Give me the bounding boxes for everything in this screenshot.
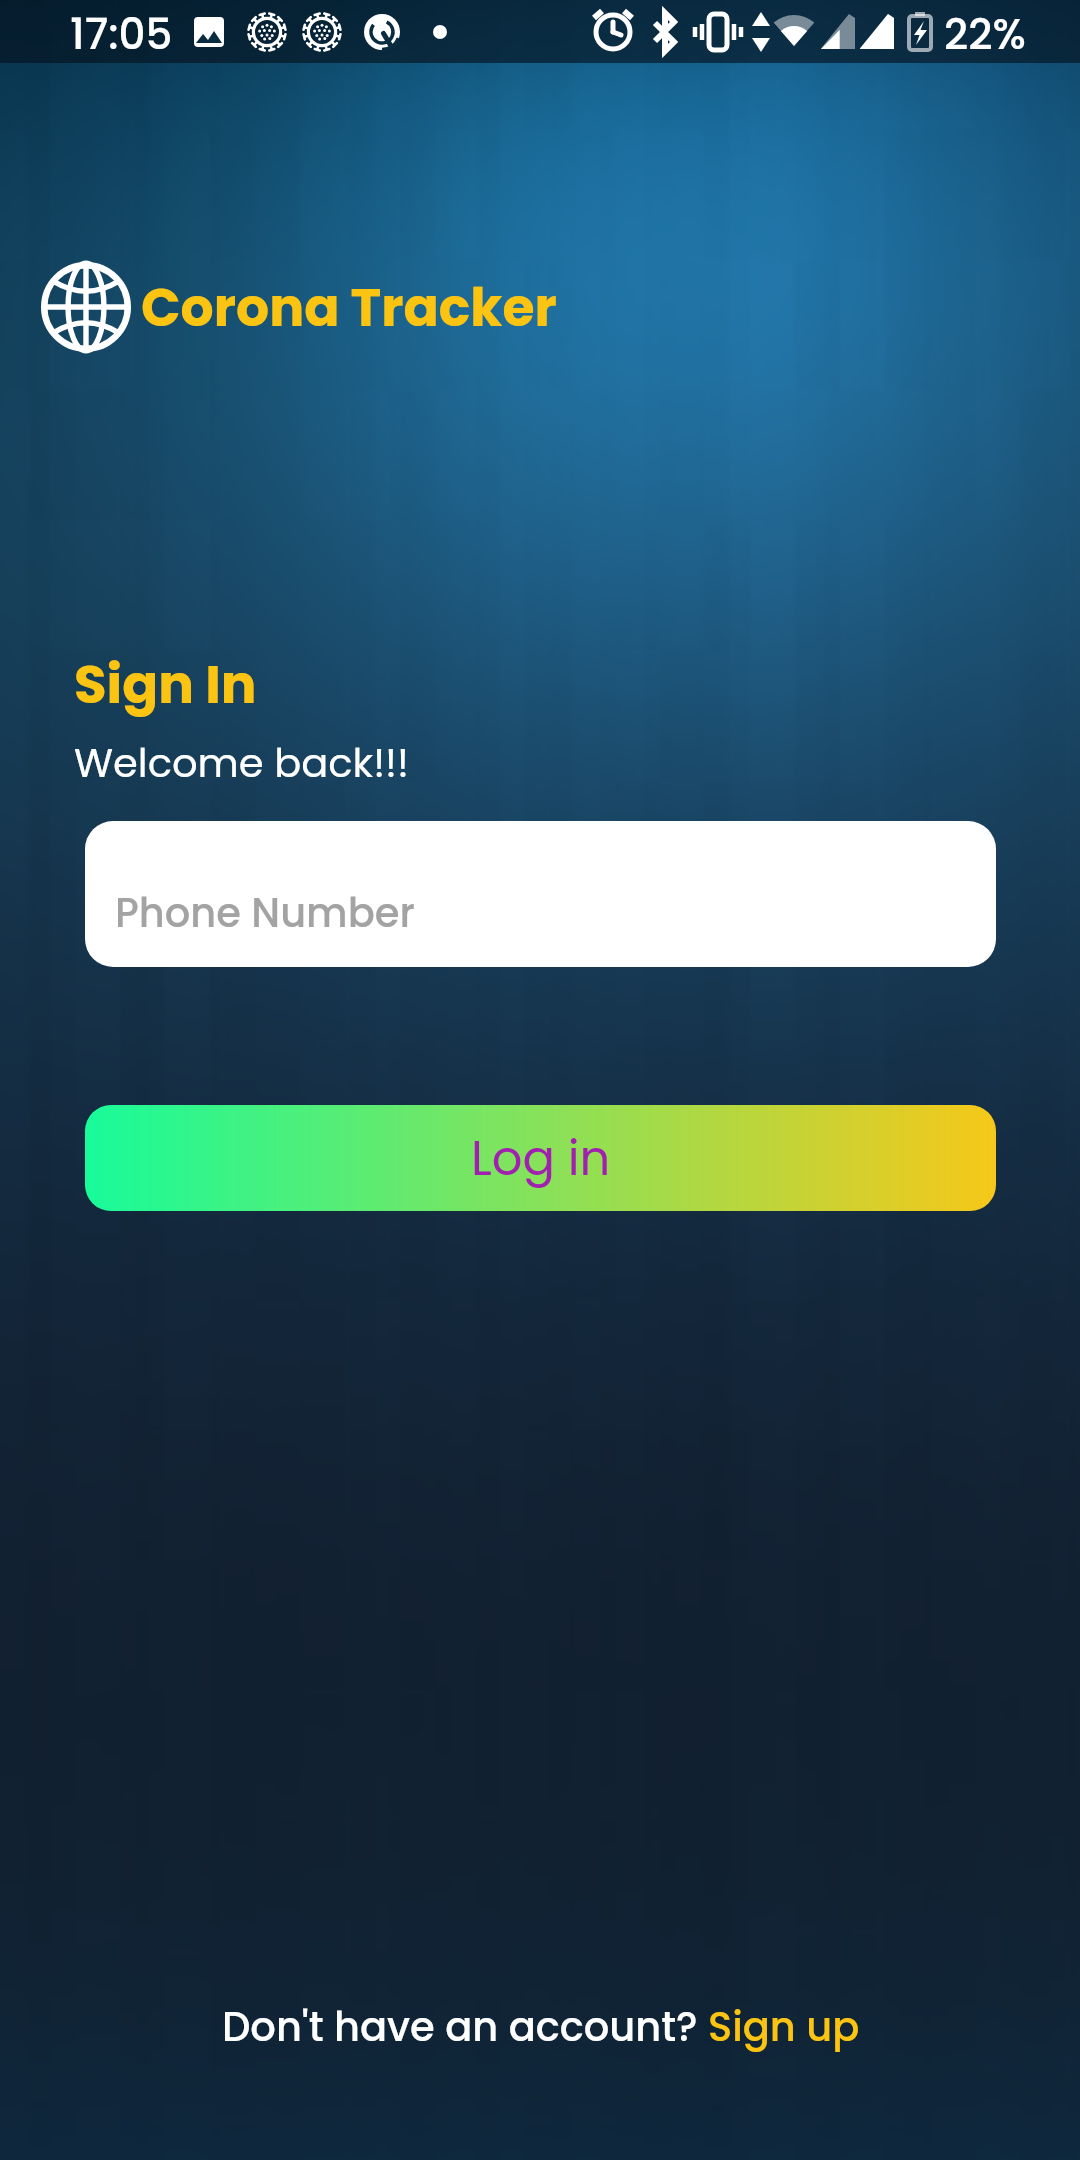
other: Corona Tracker: [41, 262, 131, 352]
button[interactable]: Sign up: [708, 1999, 860, 2055]
staticText: Sign up: [708, 1999, 860, 2055]
staticText: Don't have an account?: [222, 1999, 698, 2055]
staticText: 22%: [944, 5, 1026, 64]
button[interactable]: Log in: [85, 1105, 996, 1211]
staticText: Phone Number: [115, 885, 415, 941]
staticText: Corona Tracker: [141, 271, 557, 344]
staticText: Sign In: [74, 647, 257, 721]
staticText: Log in: [471, 1125, 611, 1192]
button[interactable]: Phone Number: [85, 821, 996, 967]
staticText: 17:05: [70, 5, 173, 64]
staticText: Welcome back!!!: [74, 735, 409, 791]
